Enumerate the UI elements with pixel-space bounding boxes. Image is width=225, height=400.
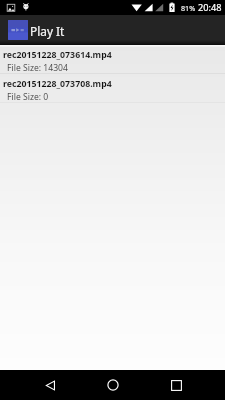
button[interactable]: App icon [8,20,28,40]
button[interactable]: Recents [161,370,191,400]
staticText: File Size: 0 [7,91,49,102]
button[interactable]: Home [98,370,128,400]
staticText: File Size: 14304 [7,62,68,73]
staticText: 81% [181,3,196,13]
button[interactable]: rec20151228_073708.mp4 [0,74,225,102]
button[interactable]: Back [35,370,65,400]
button[interactable]: rec20151228_073614.mp4 [0,45,225,73]
staticText: rec20151228_073708.mp4 [3,78,112,90]
staticText: 20:48 [198,1,222,14]
staticText: rec20151228_073614.mp4 [3,49,112,61]
staticText: Play It [30,23,65,39]
